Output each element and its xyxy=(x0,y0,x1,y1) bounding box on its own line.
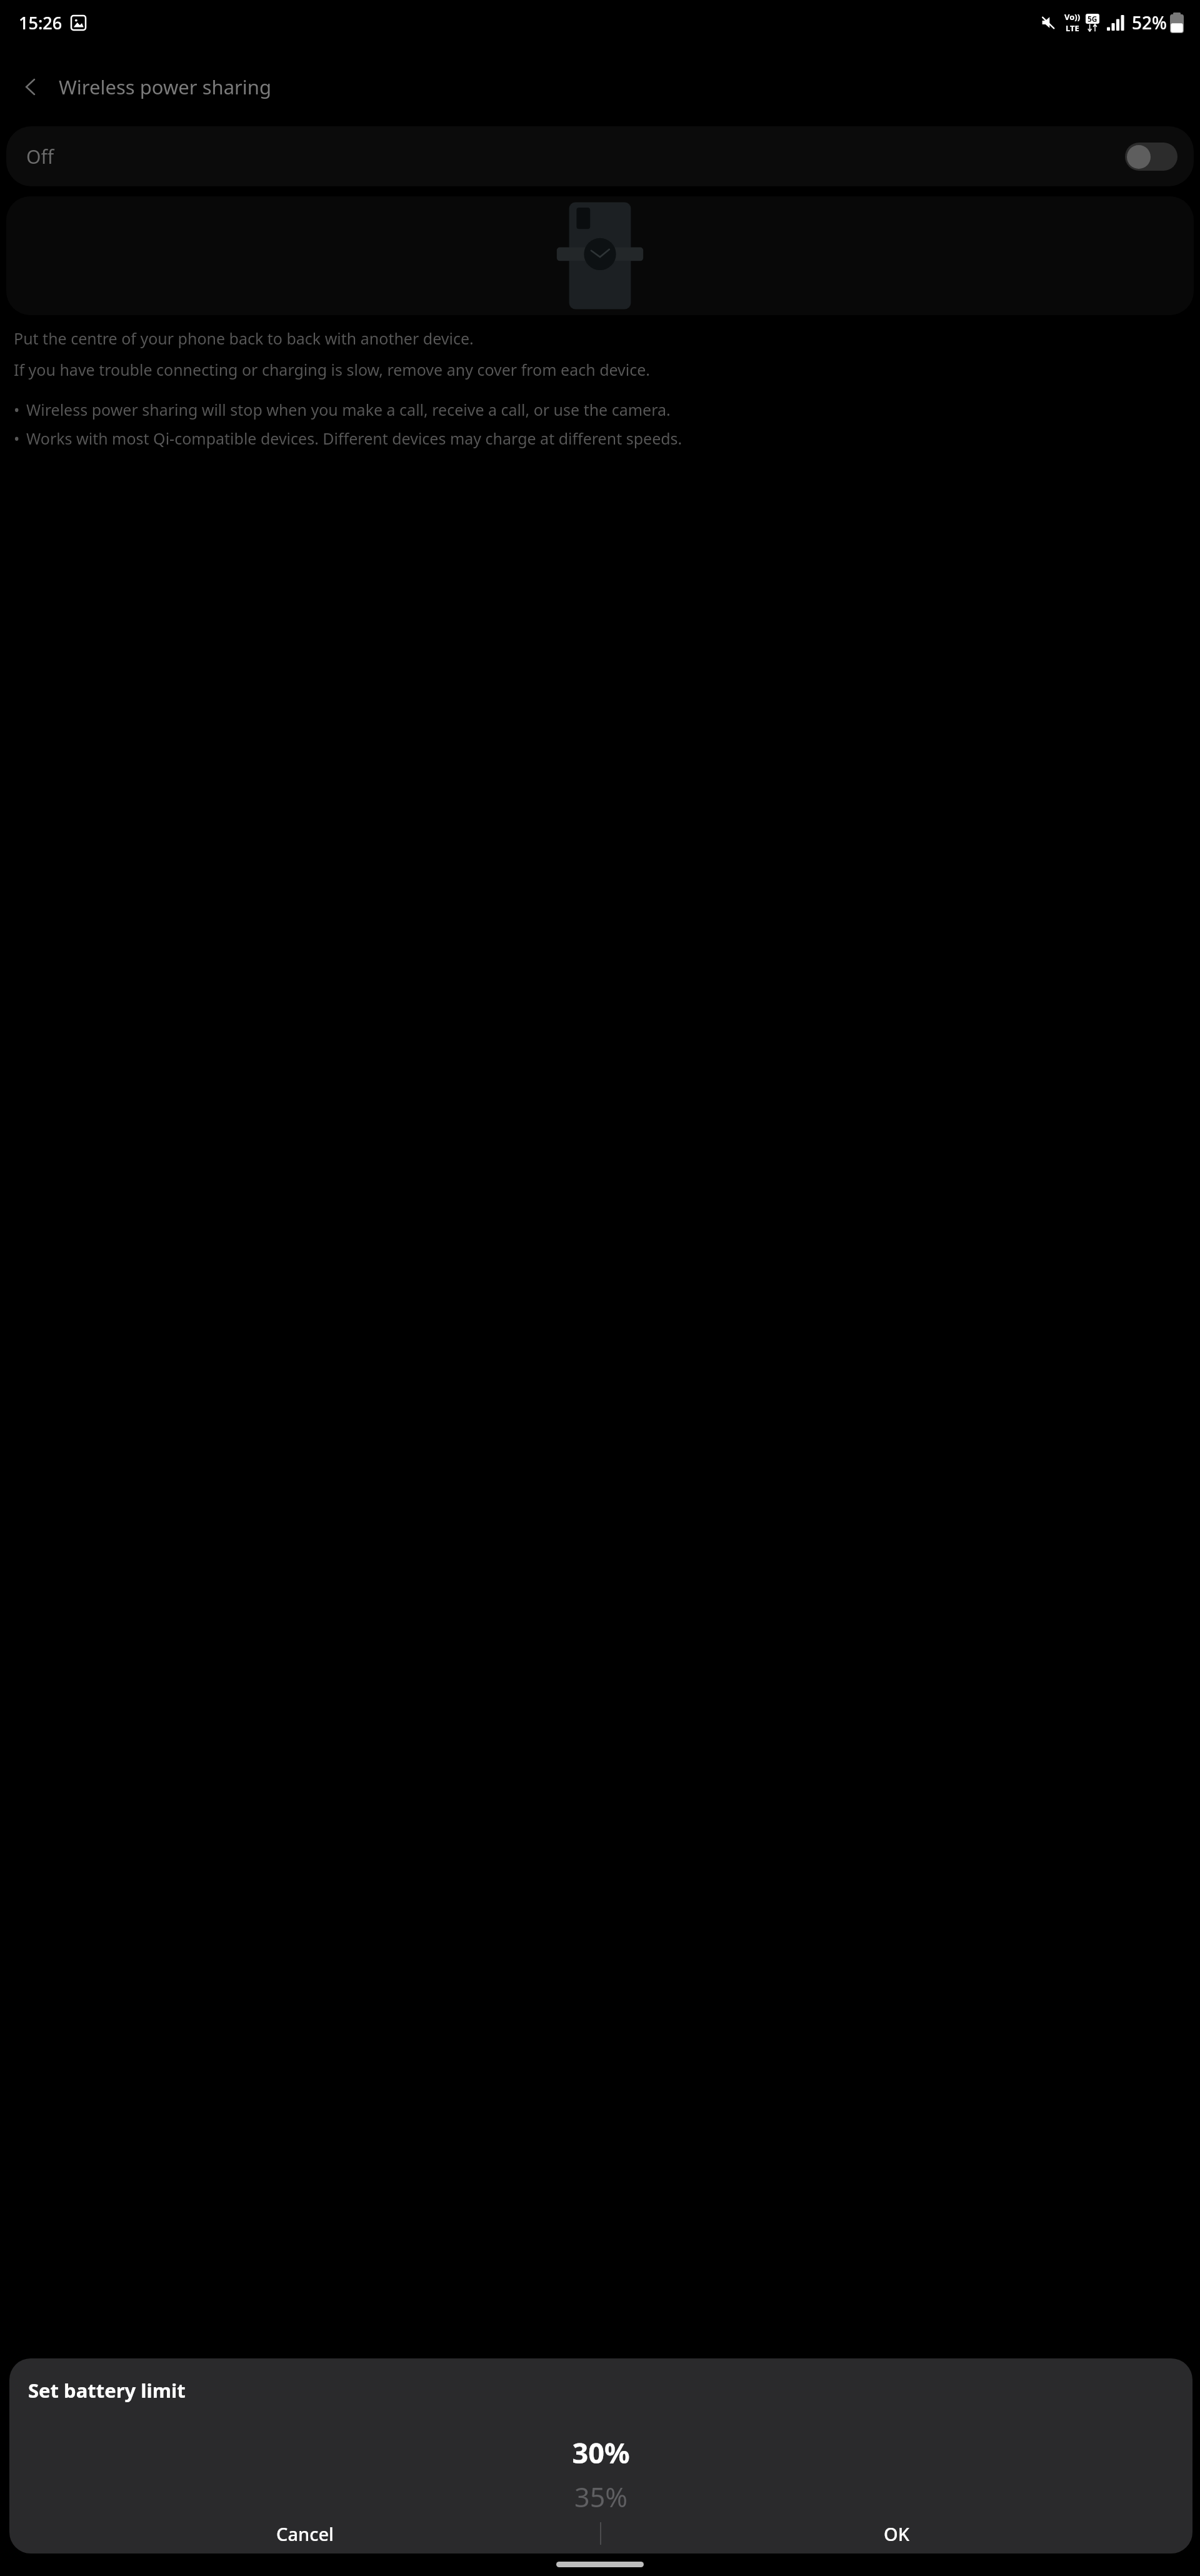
staticText: 35% xyxy=(574,2478,627,2513)
staticText: • xyxy=(14,428,20,449)
button[interactable]: Cancel xyxy=(9,2513,600,2553)
staticText: Off xyxy=(26,144,54,169)
staticText: If you have trouble connecting or chargi… xyxy=(14,359,651,380)
button[interactable]: Back xyxy=(11,68,50,106)
staticText: Wireless power sharing xyxy=(59,74,272,100)
staticText: 5G xyxy=(1087,14,1097,24)
button[interactable]: Off xyxy=(6,126,1194,186)
staticText: 30% xyxy=(572,2433,630,2471)
staticText: OK xyxy=(884,2522,910,2546)
button[interactable]: 30% xyxy=(9,2433,1192,2471)
staticText: 52% xyxy=(1132,11,1167,34)
button[interactable]: 35% xyxy=(9,2478,1192,2513)
staticText: Vo)) xyxy=(1064,11,1081,23)
staticText: • xyxy=(14,399,20,420)
staticText: 15:26 xyxy=(19,11,62,34)
staticText: Cancel xyxy=(276,2522,334,2546)
staticText: Works with most Qi-compatible devices. D… xyxy=(26,428,682,449)
button[interactable]: OK xyxy=(601,2513,1192,2553)
staticText: Set battery limit xyxy=(28,2377,186,2403)
staticText: Wireless power sharing will stop when yo… xyxy=(26,399,671,420)
staticText: Put the centre of your phone back to bac… xyxy=(14,328,474,349)
staticText: LTE xyxy=(1066,23,1079,34)
